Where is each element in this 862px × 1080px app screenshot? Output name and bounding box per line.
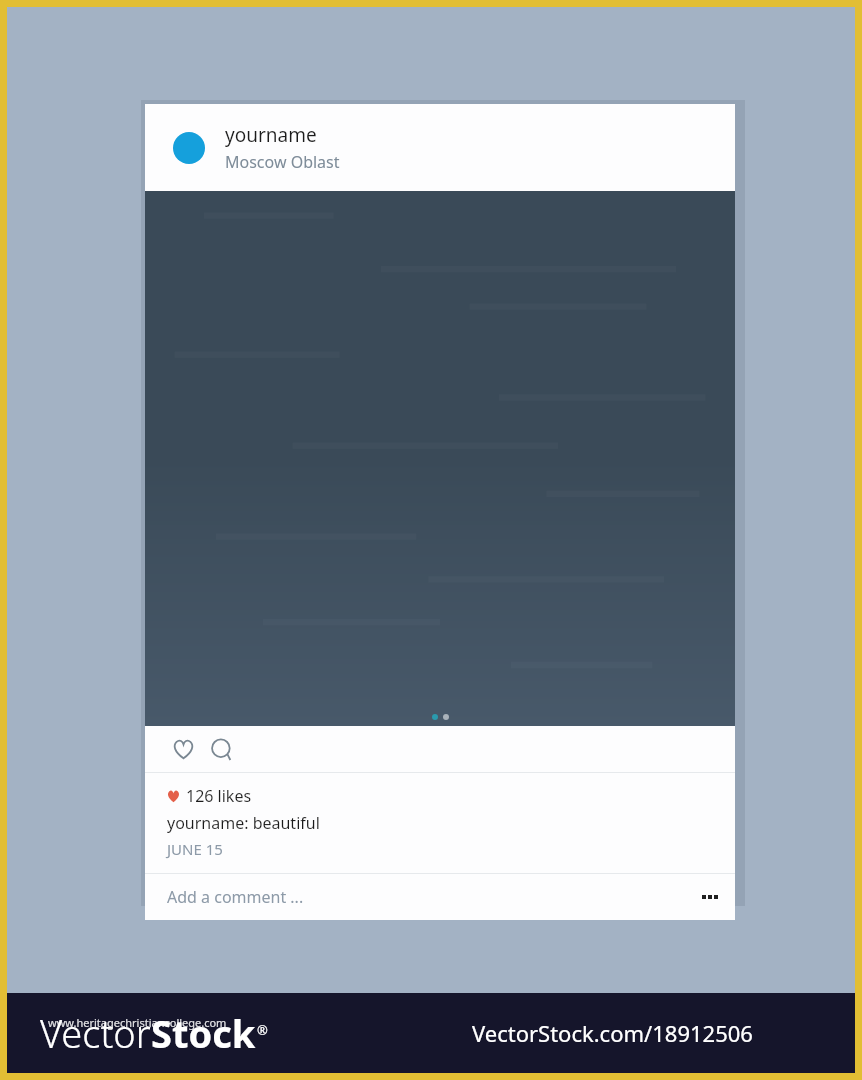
staticText: 126 likes [186, 785, 252, 807]
button[interactable]: More options [693, 880, 727, 914]
button[interactable]: Add a comment ... [145, 874, 735, 920]
staticText: Moscow Oblast [225, 151, 340, 173]
button[interactable]: Comment [205, 733, 237, 765]
staticText: yourname [225, 122, 317, 148]
staticText: JUNE 15 [167, 839, 223, 859]
staticText: yourname: beautiful [167, 812, 320, 834]
button[interactable]: yourname [145, 104, 735, 191]
button[interactable]: Like [167, 733, 199, 765]
button[interactable] [145, 191, 735, 726]
staticText: VectorStock.com/18912506 [472, 1018, 753, 1048]
staticText: Stock [151, 1007, 256, 1059]
staticText: ® [257, 1021, 268, 1039]
staticText: Add a comment ... [167, 886, 304, 908]
staticText: Vector [40, 1007, 151, 1059]
staticText: www.heritagechristiancollege.com [48, 1015, 227, 1030]
